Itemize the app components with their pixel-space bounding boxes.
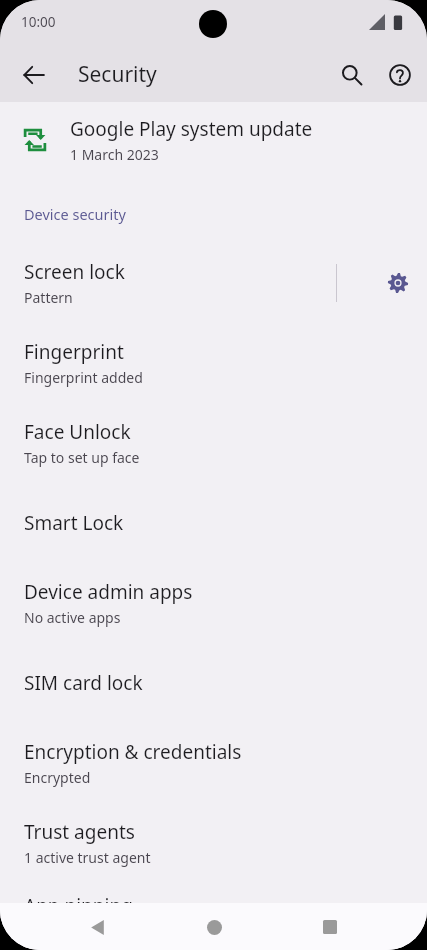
- button[interactable]: Screen lock settings: [374, 259, 422, 307]
- staticText: Encrypted: [24, 768, 91, 787]
- button[interactable]: Smart Lock: [0, 483, 427, 563]
- staticText: Device admin apps: [24, 579, 193, 605]
- staticText: Screen lock: [24, 259, 125, 285]
- staticText: Encryption & credentials: [24, 739, 242, 765]
- staticText: Security: [78, 60, 157, 89]
- button[interactable]: Help: [376, 51, 424, 99]
- staticText: Face Unlock: [24, 419, 131, 445]
- staticText: App pinning: [24, 893, 133, 919]
- staticText: Fingerprint: [24, 339, 124, 365]
- staticText: SIM card lock: [24, 670, 143, 696]
- staticText: Trust agents: [24, 819, 135, 845]
- button[interactable]: SIM card lock: [0, 643, 427, 723]
- button[interactable]: Back: [75, 905, 119, 949]
- staticText: Device security: [24, 204, 126, 224]
- staticText: 1 active trust agent: [24, 848, 151, 867]
- button[interactable]: Device admin apps: [0, 563, 427, 643]
- staticText: 1 March 2023: [70, 145, 159, 164]
- staticText: Google Play system update: [70, 116, 313, 142]
- staticText: Pattern: [24, 288, 73, 307]
- button[interactable]: Trust agents: [0, 803, 427, 883]
- button[interactable]: Face Unlock: [0, 403, 427, 483]
- button[interactable]: Fingerprint: [0, 323, 427, 403]
- button[interactable]: App pinning: [0, 883, 427, 950]
- staticText: Fingerprint added: [24, 368, 143, 387]
- button[interactable]: Home: [192, 905, 236, 949]
- staticText: Tap to set up face: [24, 448, 140, 467]
- button[interactable]: Encryption & credentials: [0, 723, 427, 803]
- button[interactable]: Screen lock: [0, 243, 427, 323]
- staticText: 10:00: [21, 13, 56, 31]
- staticText: No active apps: [24, 608, 121, 627]
- staticText: Smart Lock: [24, 510, 124, 536]
- button[interactable]: Search: [328, 51, 376, 99]
- button[interactable]: Recent apps: [308, 905, 352, 949]
- button[interactable]: Back: [10, 51, 58, 99]
- button[interactable]: Google Play system update: [0, 102, 427, 177]
